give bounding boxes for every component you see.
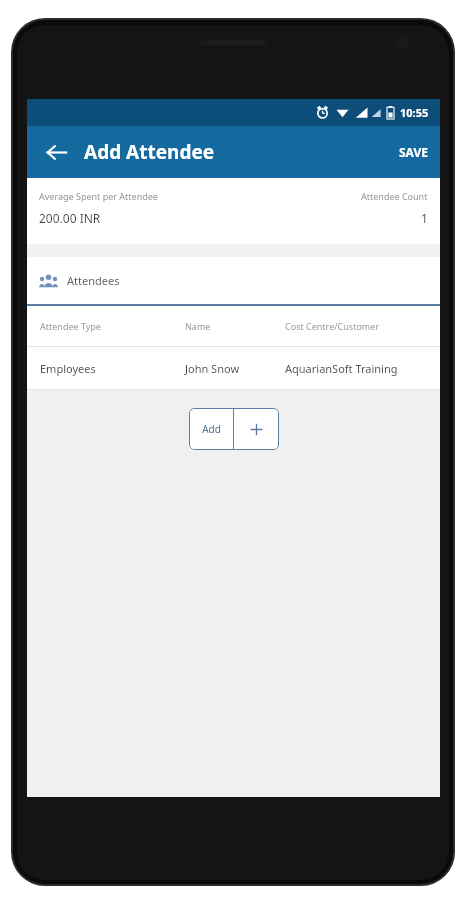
staticText: Name bbox=[185, 320, 285, 332]
staticText: Average Spent per Attendee bbox=[39, 190, 158, 202]
staticText: Add Attendee bbox=[84, 139, 215, 165]
button[interactable]: Add attendee bbox=[234, 408, 279, 450]
button[interactable]: SAVE bbox=[387, 126, 440, 178]
staticText: 1 bbox=[421, 210, 428, 226]
staticText: Employees bbox=[40, 361, 185, 376]
button[interactable]: Back bbox=[38, 134, 74, 170]
staticText: 200.00 INR bbox=[39, 210, 101, 226]
button[interactable]: Employees bbox=[27, 347, 440, 389]
staticText: AquarianSoft Training bbox=[285, 361, 398, 376]
staticText: Attendees bbox=[67, 273, 120, 288]
button[interactable]: Add bbox=[189, 408, 233, 450]
staticText: Add bbox=[202, 422, 221, 436]
staticText: 10:55 bbox=[400, 105, 429, 120]
staticText: SAVE bbox=[399, 144, 428, 160]
staticText: Attendee Count bbox=[361, 190, 428, 202]
button[interactable]: Attendees bbox=[27, 257, 440, 304]
staticText: Attendee Type bbox=[40, 320, 185, 332]
staticText: John Snow bbox=[185, 361, 285, 376]
staticText: Cost Centre/Customer bbox=[285, 320, 380, 332]
